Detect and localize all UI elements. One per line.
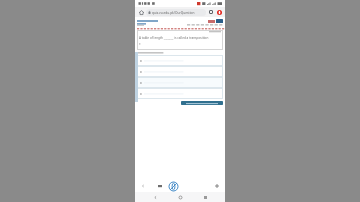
button[interactable] <box>137 88 223 99</box>
button[interactable]: Back <box>138 181 147 190</box>
button[interactable] <box>137 77 223 88</box>
button[interactable]: quiz.vu.edu.pk/OurQuestion <box>146 9 206 16</box>
button[interactable]: Home <box>175 192 185 202</box>
button[interactable]: Recent apps <box>200 192 210 202</box>
button[interactable] <box>137 55 223 66</box>
button[interactable]: New tab <box>212 181 222 191</box>
button[interactable]: Back <box>150 192 160 202</box>
staticText: quiz.vu.edu.pk/OurQuestion <box>152 11 195 15</box>
button[interactable]: Menu <box>215 8 224 17</box>
button[interactable]: Home <box>137 8 145 16</box>
button[interactable]: Speed dial <box>155 181 164 190</box>
button[interactable]: Opera <box>167 180 179 192</box>
staticText: A table of length _______ is called a tr… <box>139 36 209 40</box>
button[interactable]: Tabs <box>207 8 215 16</box>
button[interactable] <box>181 101 223 105</box>
button[interactable] <box>216 19 223 23</box>
button[interactable] <box>137 66 223 77</box>
